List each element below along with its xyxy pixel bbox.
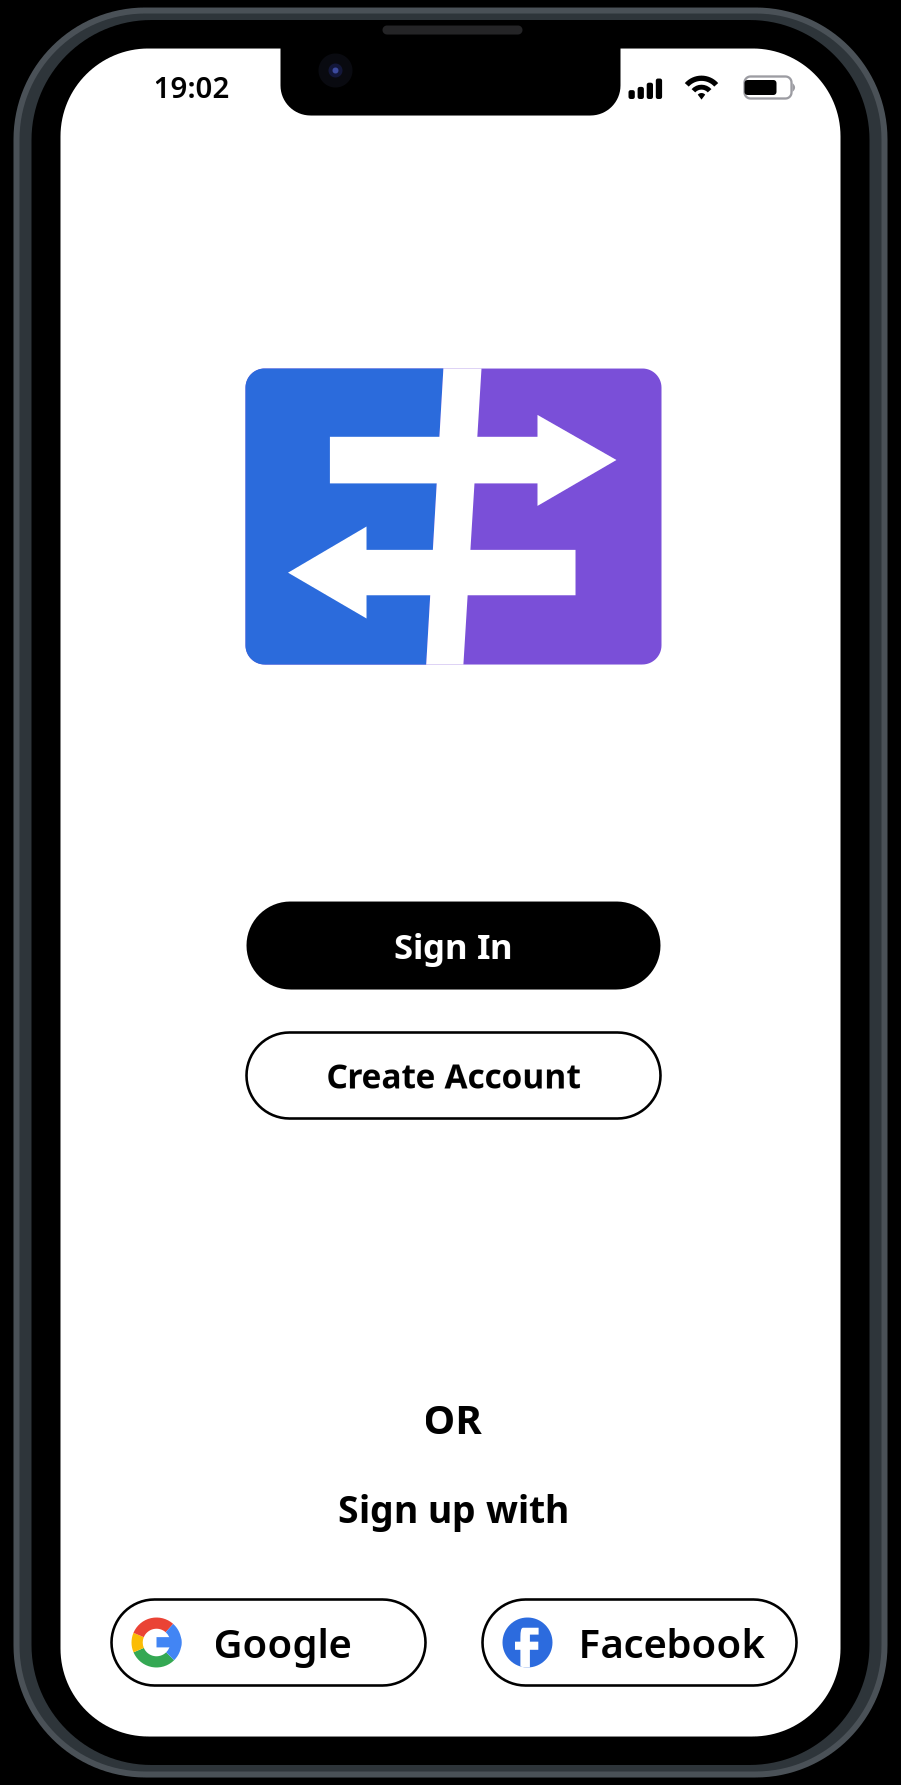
staticText: 19:02 [153, 67, 229, 106]
staticText: Create Account [326, 1053, 580, 1098]
button[interactable]: Google [111, 1599, 425, 1685]
button[interactable]: Facebook [482, 1599, 796, 1685]
staticText: Sign up with [338, 1484, 569, 1533]
staticText: OR [423, 1392, 481, 1445]
staticText: Google [213, 1616, 351, 1669]
button[interactable]: Sign In [246, 901, 660, 989]
button[interactable]: Create Account [246, 1032, 660, 1118]
staticText: Facebook [578, 1616, 765, 1669]
staticText: Sign In [394, 922, 513, 968]
